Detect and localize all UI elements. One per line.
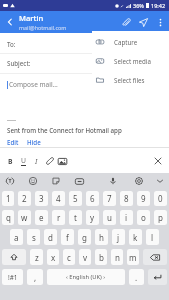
button[interactable]: g [78, 229, 91, 245]
button[interactable]: w [18, 210, 31, 225]
staticText: Edit [7, 138, 19, 146]
button[interactable]: Bold [4, 151, 17, 171]
button[interactable]: e [35, 210, 48, 225]
staticText: r [57, 212, 61, 223]
button[interactable]: Keyboard settings [131, 173, 147, 189]
staticText: 0 [158, 193, 163, 204]
button[interactable]: z [30, 249, 43, 265]
button[interactable]: 0 [154, 191, 167, 206]
button[interactable]: u [103, 210, 116, 225]
staticText: u [107, 212, 112, 223]
staticText: Capture [114, 38, 138, 46]
staticText: q [6, 212, 11, 223]
staticText: s [32, 232, 36, 243]
staticText: y [90, 212, 95, 223]
button[interactable]: Voice input [105, 173, 121, 189]
button[interactable]: !#1 [2, 269, 23, 285]
button[interactable]: Enter [148, 269, 167, 285]
button[interactable]: Select files [92, 70, 169, 89]
staticText: Sent from the Connect for Hotmail app [7, 126, 122, 134]
button[interactable]: , [27, 269, 43, 285]
button[interactable]: 1 [2, 191, 14, 206]
button[interactable]: b [95, 249, 107, 265]
staticText: Select media [114, 57, 151, 65]
staticText: Subject: [7, 59, 31, 67]
button[interactable]: Hide keyboard [152, 173, 168, 189]
button[interactable]: j [112, 229, 125, 245]
staticText: 4 [56, 193, 61, 204]
button[interactable]: q [2, 210, 14, 225]
button[interactable]: Handwriting [2, 173, 18, 189]
button[interactable]: Clipboard [71, 173, 87, 189]
button[interactable]: 7 [103, 191, 116, 206]
button[interactable]: More options [152, 11, 169, 33]
button[interactable]: Attach file [118, 11, 135, 33]
staticText: I [35, 156, 38, 166]
button[interactable]: . [129, 269, 144, 285]
staticText: !#1 [8, 273, 18, 282]
button[interactable]: Underline [17, 151, 30, 171]
button[interactable]: o [137, 210, 150, 225]
button[interactable]: y [86, 210, 99, 225]
button[interactable]: p [154, 210, 167, 225]
button[interactable]: 6 [86, 191, 99, 206]
button[interactable]: Emoji [25, 173, 41, 189]
button[interactable]: i [120, 210, 133, 225]
staticText: 5 [73, 193, 78, 204]
button[interactable]: h [95, 229, 108, 245]
button[interactable]: Insert image [56, 151, 69, 171]
button[interactable]: Insert link [43, 151, 56, 171]
button[interactable]: 2 [18, 191, 31, 206]
button[interactable]: x [47, 249, 59, 265]
button[interactable]: n [111, 249, 123, 265]
button[interactable]: Send [135, 11, 152, 33]
staticText: n [115, 252, 120, 263]
staticText: v [83, 252, 88, 263]
button[interactable]: d [44, 229, 57, 245]
button[interactable]: s [27, 229, 40, 245]
button[interactable]: l [146, 229, 159, 245]
staticText: d [48, 232, 53, 243]
staticText: b [99, 252, 104, 263]
button[interactable]: c [63, 249, 75, 265]
button[interactable]: 4 [52, 191, 65, 206]
button[interactable]: 5 [69, 191, 82, 206]
staticText: l [151, 232, 154, 243]
button[interactable]: ‹ English (UK) › [47, 269, 125, 285]
button[interactable]: Select media [92, 51, 169, 70]
button[interactable]: Capture [92, 32, 169, 51]
button[interactable]: m [127, 249, 139, 265]
staticText: j [117, 232, 120, 243]
button[interactable]: 3 [35, 191, 48, 206]
button[interactable]: t [69, 210, 82, 225]
staticText: 2 [22, 193, 27, 204]
staticText: z [35, 252, 39, 263]
staticText: f [66, 232, 69, 243]
staticText: Compose mail... [9, 80, 58, 89]
button[interactable]: Stickers [48, 173, 64, 189]
button[interactable]: Backspace [143, 249, 167, 265]
button[interactable]: v [79, 249, 91, 265]
button[interactable]: f [61, 229, 74, 245]
button[interactable]: 8 [120, 191, 133, 206]
staticText: e [39, 212, 44, 223]
staticText: 6 [90, 193, 95, 204]
button[interactable]: Italic [30, 151, 43, 171]
staticText: Select files [114, 76, 145, 84]
button[interactable]: Shift [2, 249, 26, 265]
button[interactable]: k [129, 229, 142, 245]
staticText: 9 [141, 193, 146, 204]
button[interactable]: Back [0, 11, 19, 33]
staticText: ‹ English (UK) › [66, 273, 106, 281]
staticText: 19:42 [151, 2, 166, 9]
staticText: Martin [19, 13, 44, 23]
staticText: 7 [107, 193, 112, 204]
staticText: To: [7, 40, 16, 48]
button[interactable]: Close formatting bar [150, 153, 166, 169]
staticText: o [141, 212, 146, 223]
button[interactable]: 9 [137, 191, 150, 206]
staticText: g [82, 232, 87, 243]
button[interactable]: r [52, 210, 65, 225]
staticText: 8 [124, 193, 129, 204]
button[interactable]: a [10, 229, 23, 245]
